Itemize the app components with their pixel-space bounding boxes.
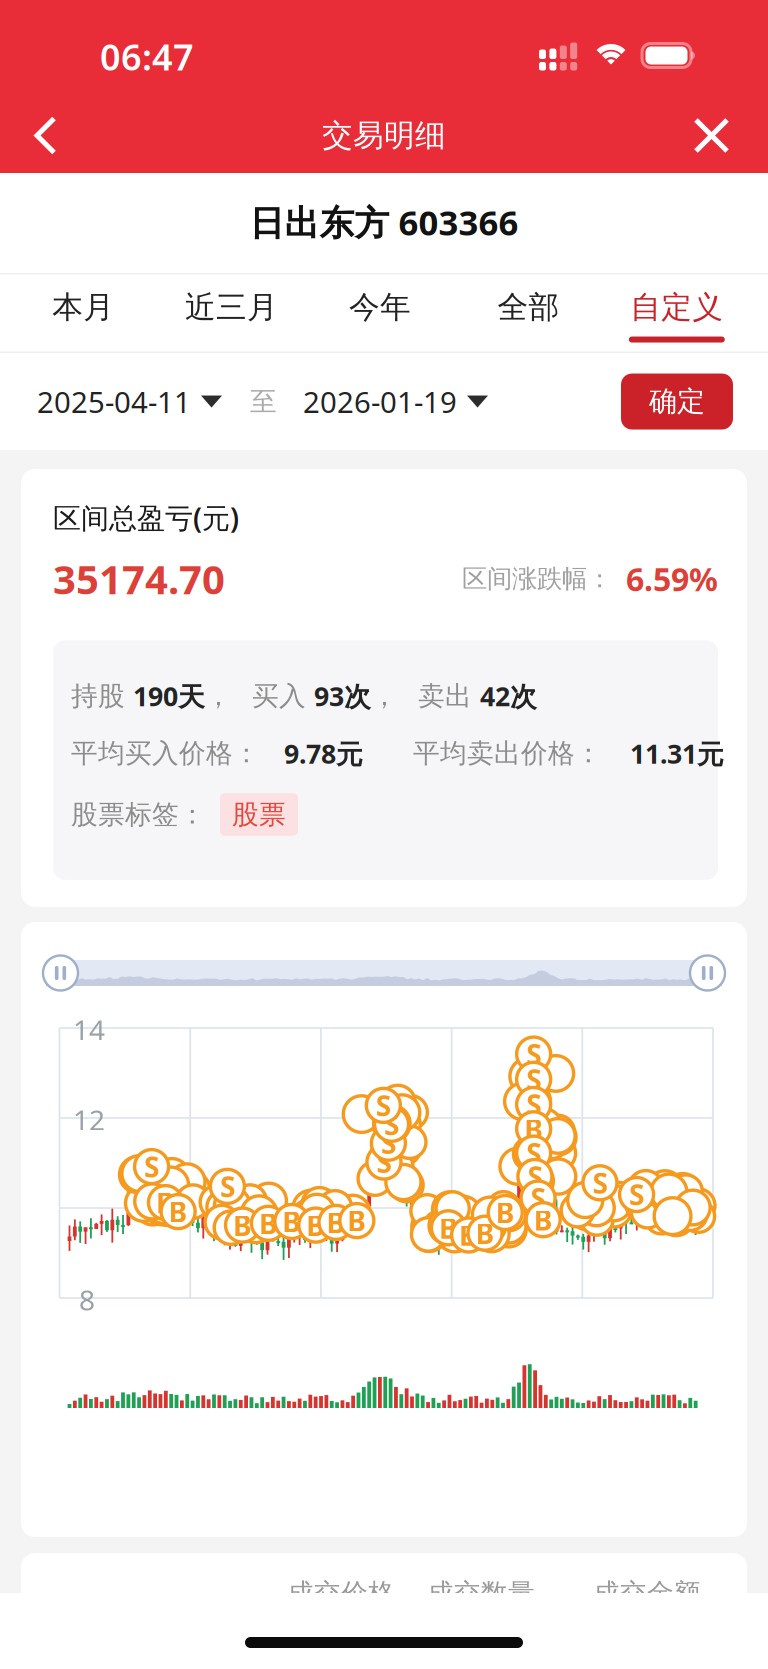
staticText: 卖出 [418,680,480,712]
staticText: 6.59% [626,557,718,600]
staticText: S [527,1158,542,1195]
staticText: B [459,1216,478,1254]
staticText: B [259,1205,278,1242]
staticText: 2025-04-11 [37,382,191,421]
staticText: 区间涨跌幅： [462,563,612,594]
staticText: B [475,1215,494,1252]
staticText: S [384,1106,399,1143]
staticText: 今年 [349,288,411,326]
staticText: S [526,1061,541,1098]
button[interactable]: 确定 [621,373,733,429]
staticText: B [524,1110,543,1147]
staticText: S [376,1143,391,1181]
staticText: B [439,1209,458,1246]
staticText: 股票标签： [71,798,206,831]
staticText: 平均卖出价格： [413,737,602,770]
staticText: 买入 [252,680,314,712]
staticText: B [496,1194,515,1231]
staticText: 至 [250,385,277,418]
button[interactable]: 2026-01-19 [303,382,488,421]
staticText: B [169,1193,188,1230]
button[interactable]: Close [672,99,768,172]
staticText: 自定义 [630,288,723,326]
staticText: 股票 [232,798,286,831]
staticText: B [306,1206,325,1244]
staticText: 93次 [314,678,371,714]
staticText: B [282,1203,301,1240]
staticText: 成交金额 [593,1577,701,1610]
staticText: S [629,1176,644,1213]
staticText: S [526,1035,541,1073]
staticText: 190天 [133,678,205,714]
button[interactable]: 自定义 [603,274,751,351]
button[interactable]: 全部 [454,274,603,351]
staticText: 本月 [52,288,114,326]
staticText: S [592,1164,607,1201]
staticText: S [526,1134,541,1172]
staticText: 成交价格 [287,1577,395,1610]
staticText: 交易明细 [322,117,446,154]
staticText: S [144,1148,159,1185]
staticText: S [220,1168,235,1205]
staticText: 35174.70 [53,552,225,605]
staticText: 8 [79,1281,95,1318]
staticText: 全部 [497,288,559,326]
button[interactable]: 2025-04-11 [37,382,222,421]
staticText: ， [205,680,232,712]
staticText: 持股 [71,680,133,712]
staticText: B [156,1184,175,1221]
button[interactable]: 今年 [306,274,454,351]
staticText: 日出东方 603366 [249,199,518,245]
staticText: ， [371,680,398,712]
staticText: 成交数量 [427,1577,535,1610]
staticText: 12 [73,1101,105,1138]
staticText: 区间总盈亏(元) [53,499,239,536]
button[interactable]: Back [0,99,81,172]
button[interactable]: 近三月 [157,274,306,351]
button[interactable]: 本月 [9,274,157,351]
staticText: 9.78元 [284,736,363,771]
staticText: B [233,1206,252,1244]
staticText: 11.31元 [630,736,724,771]
staticText: B [347,1202,366,1239]
staticText: 确定 [649,384,705,419]
staticText: B [534,1201,553,1238]
staticText: 近三月 [185,288,278,326]
staticText: 平均买入价格： [71,737,260,770]
staticText: S [526,1086,541,1123]
staticText: 42次 [480,678,537,714]
staticText: 2026-01-19 [303,382,457,421]
staticText: S [531,1179,546,1217]
staticText: S [376,1087,391,1124]
staticText: S [381,1125,396,1162]
staticText: B [326,1204,345,1241]
staticText: 06:47 [100,33,194,80]
staticText: 14 [73,1011,105,1048]
